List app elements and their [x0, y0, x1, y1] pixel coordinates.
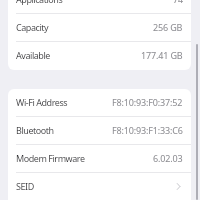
button[interactable]: Wi-Fi Address: [8, 89, 191, 117]
button[interactable]: Applications: [8, 0, 191, 14]
button[interactable]: Modem Firmware: [8, 145, 191, 173]
staticText: Available: [16, 49, 50, 61]
button[interactable]: Capacity: [8, 14, 191, 42]
staticText: Modem Firmware: [16, 152, 85, 164]
other: Open: [174, 182, 183, 191]
button[interactable]: Available: [8, 42, 191, 70]
staticText: Capacity: [16, 21, 49, 33]
staticText: SEID: [16, 180, 34, 192]
staticText: F8:10:93:F0:37:52: [112, 96, 183, 108]
staticText: 177.41 GB: [141, 49, 183, 61]
staticText: 256 GB: [153, 21, 183, 33]
staticText: 6.02.03: [153, 152, 183, 164]
button[interactable]: SEID: [8, 173, 191, 200]
button[interactable]: Bluetooth: [8, 117, 191, 145]
staticText: Wi-Fi Address: [16, 96, 68, 108]
staticText: Applications: [16, 0, 63, 5]
staticText: Bluetooth: [16, 124, 54, 136]
staticText: 74: [173, 0, 183, 5]
staticText: F8:10:93:F1:33:C6: [112, 124, 183, 136]
